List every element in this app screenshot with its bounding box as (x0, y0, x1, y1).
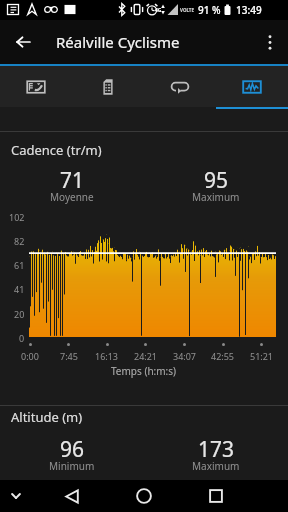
button[interactable]: Recent apps (198, 480, 234, 512)
staticText: Moyenne (50, 190, 94, 204)
staticText: 24:21 (134, 350, 158, 362)
staticText: Maximum (192, 459, 240, 473)
staticText: Altitude (m) (11, 408, 83, 426)
staticText: Maximum (192, 190, 240, 204)
button[interactable]: More options (252, 20, 288, 64)
staticText: Réalville Cyclisme (56, 32, 180, 52)
button[interactable]: Navigate up (0, 20, 45, 64)
button[interactable]: Map (0, 66, 72, 107)
staticText: 71 (60, 166, 85, 195)
staticText: 102 (9, 211, 25, 223)
button[interactable]: Charts (216, 66, 288, 107)
staticText: 13:49 (236, 3, 262, 17)
staticText: 0:00 (21, 350, 39, 362)
button[interactable]: Summary (72, 66, 144, 107)
staticText: Temps (h:m:s) (111, 364, 177, 378)
staticText: Cadence (tr/m) (11, 141, 102, 159)
button[interactable]: Back (54, 480, 90, 512)
staticText: Minimum (49, 459, 95, 473)
staticText: 4G (155, 7, 162, 14)
staticText: 95 (204, 166, 229, 195)
staticText: 51:21 (250, 350, 274, 362)
button[interactable]: Laps (144, 66, 216, 107)
staticText: 91 % (198, 3, 221, 17)
staticText: 34:07 (173, 350, 197, 362)
staticText: 16:13 (95, 350, 119, 362)
button[interactable]: Hide keyboard (0, 480, 32, 512)
staticText: 96 (60, 435, 85, 464)
staticText: 42:55 (211, 350, 235, 362)
button[interactable]: Home (126, 480, 162, 512)
staticText: VOLTE (180, 7, 194, 13)
staticText: 7:45 (60, 350, 78, 362)
staticText: 41 (14, 283, 25, 295)
staticText: 61 (14, 259, 25, 271)
staticText: 82 (14, 235, 25, 247)
staticText: 0 (19, 332, 25, 344)
staticText: 173 (198, 435, 235, 464)
staticText: 20 (14, 308, 25, 320)
